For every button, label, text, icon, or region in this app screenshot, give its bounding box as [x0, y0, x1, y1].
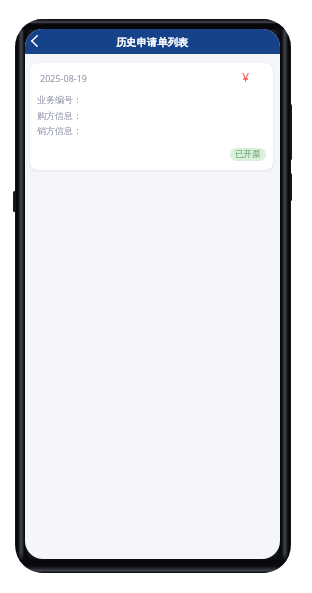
button[interactable]: Back	[25, 30, 45, 52]
button[interactable]: 已开票	[230, 148, 266, 161]
staticText: 历史申请单列表	[116, 36, 189, 49]
staticText: ¥	[242, 69, 250, 86]
staticText: 2025-08-19	[40, 72, 87, 84]
staticText: 业务编号：	[37, 94, 82, 105]
staticText: 已开票	[235, 149, 261, 160]
staticText: 销方信息：	[37, 125, 82, 136]
staticText: 购方信息：	[37, 110, 82, 121]
button[interactable]: 2025-08-19	[30, 63, 273, 170]
